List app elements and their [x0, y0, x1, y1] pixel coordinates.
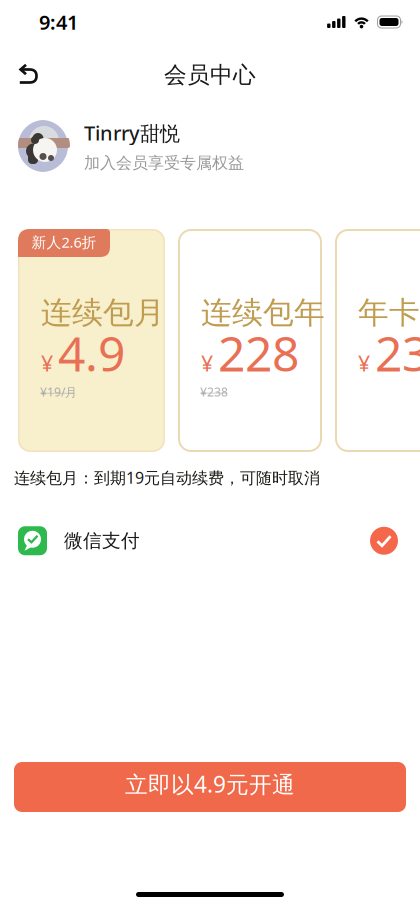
- button[interactable]: 连续包年: [178, 229, 322, 452]
- staticText: 连续包月: [41, 294, 165, 332]
- button[interactable]: Back: [0, 62, 38, 81]
- staticText: 新人2.6折: [31, 232, 96, 252]
- staticText: Tinrry甜悦: [84, 119, 180, 146]
- staticText: 会员中心: [164, 61, 256, 89]
- staticText: 4.9: [58, 321, 125, 385]
- staticText: 238: [375, 321, 420, 385]
- staticText: 9:41: [39, 9, 78, 35]
- staticText: ¥19/月: [40, 384, 77, 400]
- staticText: 连续包年: [201, 294, 325, 332]
- staticText: ¥: [358, 349, 370, 377]
- button[interactable]: 微信支付: [0, 526, 420, 555]
- staticText: 228: [218, 321, 299, 385]
- button[interactable]: 年卡: [335, 229, 420, 452]
- staticText: ¥: [41, 349, 53, 377]
- staticText: 微信支付: [64, 529, 140, 552]
- staticText: 加入会员享受专属权益: [84, 153, 244, 173]
- staticText: 立即以4.9元开通: [125, 769, 295, 799]
- staticText: 年卡: [358, 294, 420, 332]
- staticText: 连续包月：到期19元自动续费，可随时取消: [14, 467, 320, 488]
- staticText: ¥: [201, 349, 213, 377]
- button[interactable]: 连续包月: [18, 229, 165, 452]
- staticText: ¥238: [200, 384, 228, 400]
- button[interactable]: 立即以4.9元开通: [14, 762, 406, 812]
